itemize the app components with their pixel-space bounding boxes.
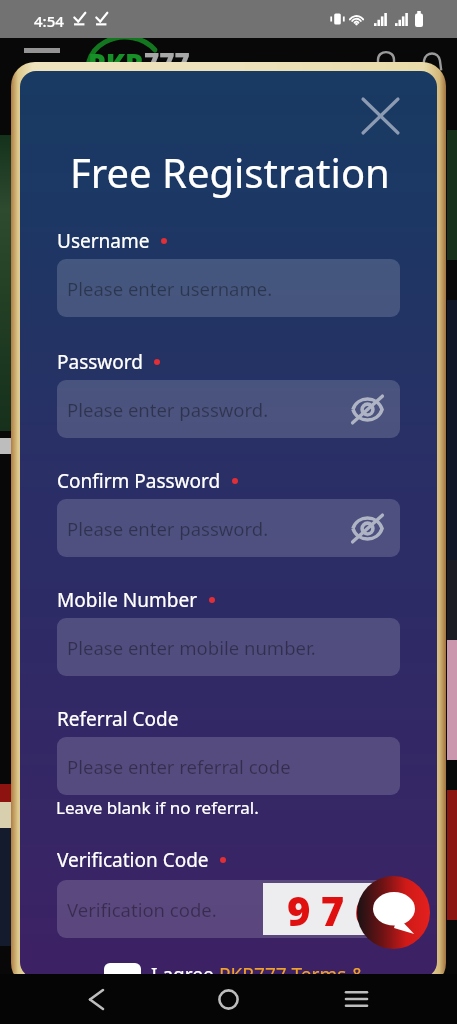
button[interactable]: Menu — [24, 44, 60, 57]
staticText: Username — [57, 228, 150, 254]
button[interactable]: Home — [198, 974, 258, 1024]
staticText: Verification Code — [57, 847, 209, 873]
staticText: Free Registration — [70, 145, 390, 199]
staticText: Please enter mobile number. — [67, 635, 316, 660]
staticText: PKR — [88, 44, 144, 82]
button[interactable]: Live chat — [357, 876, 430, 949]
button[interactable]: Back — [66, 974, 126, 1024]
button[interactable]: Recent apps — [326, 974, 386, 1024]
button[interactable]: Notifications — [368, 40, 404, 76]
staticText: Password — [57, 349, 143, 375]
staticText: I agree — [151, 962, 219, 988]
staticText: Verification code. — [67, 897, 217, 922]
button[interactable]: Please enter password. — [57, 499, 400, 557]
button[interactable]: Close — [354, 90, 406, 142]
staticText: Confirm Password — [57, 468, 221, 494]
staticText: 9 7 6 2 — [287, 883, 400, 935]
button[interactable]: Please enter password. — [57, 380, 400, 438]
staticText: PKR777 Terms & — [219, 962, 366, 988]
button[interactable]: Please enter referral code — [57, 737, 400, 795]
staticText: 4:54 — [34, 11, 64, 31]
staticText: Please enter referral code — [67, 754, 291, 779]
staticText: Referral Code — [57, 706, 179, 732]
staticText: Please enter username. — [67, 276, 273, 301]
button[interactable]: Please enter username. — [57, 259, 400, 317]
staticText: Mobile Number — [57, 587, 198, 613]
button[interactable]: Verification code. — [57, 880, 400, 938]
staticText: Please enter password. — [67, 397, 269, 422]
button[interactable]: Messages — [414, 40, 450, 76]
staticText: 777 — [144, 44, 190, 79]
button[interactable]: Agree to terms — [104, 963, 141, 991]
button[interactable]: Please enter mobile number. — [57, 618, 400, 676]
staticText: Please enter password. — [67, 516, 269, 541]
staticText: Leave blank if no referral. — [56, 796, 259, 819]
